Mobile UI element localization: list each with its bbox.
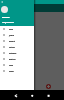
staticText: Notifikasi	[9, 52, 17, 54]
button[interactable]: Riwayat	[0, 38, 34, 44]
staticText: Notifikasi	[9, 52, 17, 54]
staticText: Keluar	[9, 70, 14, 72]
staticText: Notifikasi	[9, 52, 17, 54]
staticText: Antrian	[9, 46, 15, 48]
staticText: Antrian	[9, 46, 15, 48]
staticText: Keluar	[9, 70, 14, 72]
staticText: Antrian	[9, 46, 15, 48]
button[interactable]: Akun	[0, 62, 34, 68]
staticText: Profil	[9, 28, 13, 30]
staticText: Profil	[9, 28, 13, 30]
staticText: Jadwal	[9, 34, 14, 36]
staticText: user@gmail.com	[2, 21, 14, 23]
staticText: user@gmail.com	[2, 21, 14, 23]
button[interactable]: Profil	[0, 26, 34, 32]
staticText: Profil	[9, 28, 13, 30]
staticText: Maulana	[2, 16, 10, 18]
staticText: Riwayat	[9, 40, 16, 42]
staticText: Bantuan	[9, 58, 16, 60]
button[interactable]: Notifikasi	[0, 50, 34, 56]
staticText: Maulana	[2, 16, 10, 18]
staticText: Akun	[9, 64, 13, 66]
button[interactable]: Jadwal	[0, 32, 34, 38]
staticText: Keluar	[9, 70, 14, 72]
staticText: Akun	[9, 64, 13, 66]
staticText: Jadwal	[9, 34, 14, 36]
button[interactable]: Antrian	[0, 44, 34, 50]
staticText: Bantuan	[9, 58, 16, 60]
staticText: Riwayat	[9, 40, 16, 42]
staticText: Maulana	[2, 16, 10, 18]
staticText: Riwayat	[9, 40, 16, 42]
staticText: Jadwal	[9, 34, 14, 36]
staticText: user@gmail.com	[2, 21, 14, 23]
button[interactable]: Bantuan	[0, 56, 34, 62]
button[interactable]: Keluar	[0, 68, 34, 74]
staticText: Akun	[9, 64, 13, 66]
staticText: Bantuan	[9, 58, 16, 60]
button[interactable]: Add	[46, 84, 51, 89]
